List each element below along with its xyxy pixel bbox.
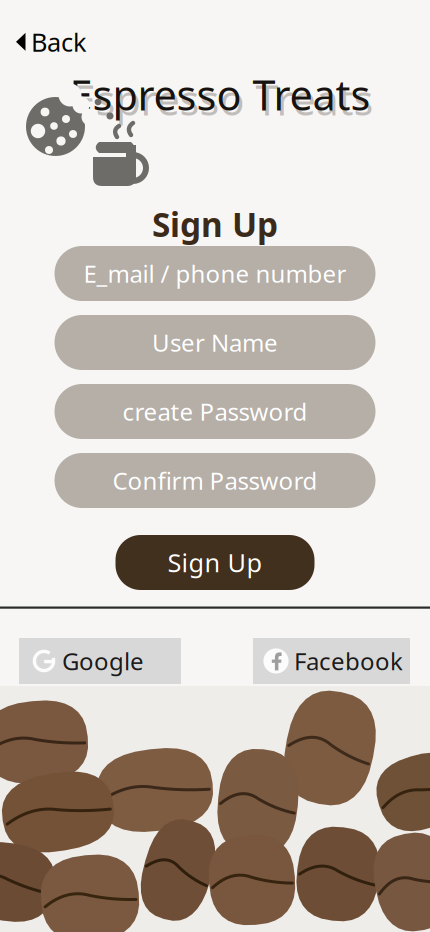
- staticText: Sign Up: [167, 546, 262, 579]
- button[interactable]: E_mail / phone number: [54, 246, 375, 301]
- staticText: Facebook: [294, 645, 403, 677]
- button[interactable]: Confirm Password: [54, 453, 375, 508]
- button[interactable]: Back: [0, 18, 99, 66]
- staticText: E_mail / phone number: [83, 258, 346, 289]
- staticText: User Name: [152, 327, 278, 358]
- button[interactable]: Facebook: [253, 638, 410, 684]
- button[interactable]: create Password: [54, 384, 375, 439]
- staticText: Espresso Treats: [69, 67, 370, 122]
- button[interactable]: Sign Up: [115, 535, 314, 590]
- button[interactable]: User Name: [54, 315, 375, 370]
- staticText: Confirm Password: [112, 465, 317, 496]
- button[interactable]: Google: [19, 638, 181, 684]
- staticText: Google: [62, 645, 144, 677]
- staticText: Sign Up: [152, 202, 278, 246]
- staticText: Espresso Treats: [72, 72, 373, 127]
- staticText: Back: [31, 25, 87, 59]
- staticText: create Password: [122, 396, 307, 427]
